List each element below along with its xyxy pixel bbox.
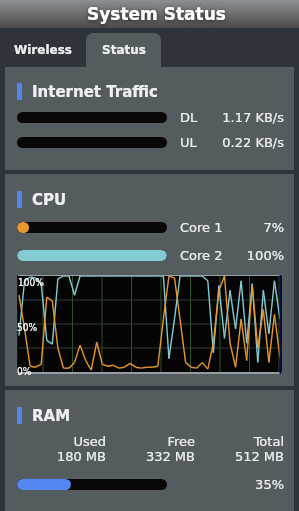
staticText: CPU [32, 191, 67, 208]
staticText: Used [17, 434, 106, 449]
staticText: 180 MB [17, 449, 106, 464]
staticText: 100% [18, 277, 44, 289]
staticText: 0% [17, 366, 32, 378]
staticText: 0.22 KB/s [197, 135, 284, 150]
staticText: 332 MB [106, 449, 195, 464]
staticText: Internet Traffic [32, 83, 158, 100]
staticText: 7% [223, 220, 284, 235]
staticText: Status [102, 43, 146, 57]
button[interactable]: Status [86, 33, 161, 67]
staticText: 35% [167, 477, 284, 492]
staticText: Wireless [14, 43, 72, 57]
staticText: Core 1 [180, 220, 223, 235]
staticText: 512 MB [195, 449, 284, 464]
staticText: Free [106, 434, 195, 449]
staticText: UL [180, 135, 197, 150]
staticText: DL [180, 110, 198, 125]
staticText: Total [195, 434, 284, 449]
staticText: 50% [17, 322, 37, 334]
button[interactable]: Wireless [0, 28, 86, 67]
staticText: 100% [223, 248, 284, 263]
staticText: RAM [32, 407, 71, 424]
staticText: System Status [87, 4, 226, 24]
staticText: 1.17 KB/s [198, 110, 284, 125]
staticText: Core 2 [180, 248, 223, 263]
